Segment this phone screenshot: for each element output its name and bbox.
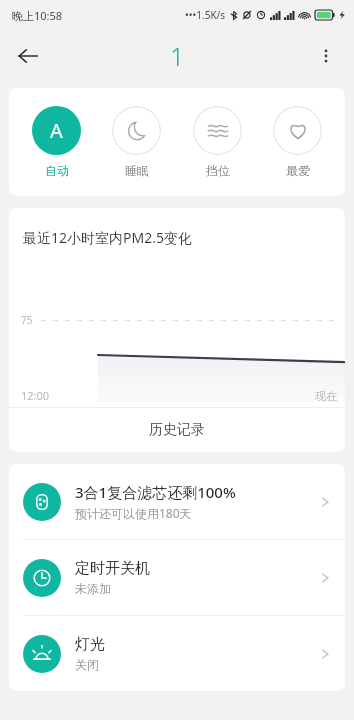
staticText: 3合1复合滤芯还剩100% bbox=[75, 482, 236, 502]
staticText: 1 bbox=[170, 39, 185, 73]
button[interactable]: Back bbox=[6, 34, 50, 78]
button[interactable]: 灯光 bbox=[9, 616, 345, 691]
staticText: 12:00 bbox=[21, 388, 50, 403]
staticText: 自动 bbox=[45, 163, 69, 178]
button[interactable]: More options bbox=[304, 34, 348, 78]
staticText: A bbox=[50, 117, 63, 144]
staticText: 挡位 bbox=[206, 163, 230, 178]
button[interactable]: A bbox=[24, 106, 89, 178]
staticText: •••1.5K/s bbox=[185, 8, 226, 22]
staticText: 灯光 bbox=[75, 635, 105, 654]
button[interactable]: 历史记录 bbox=[9, 408, 345, 452]
button[interactable]: 定时开关机 bbox=[9, 540, 345, 615]
staticText: 最近12小时室内PM2.5变化 bbox=[23, 228, 192, 247]
staticText: 历史记录 bbox=[149, 421, 205, 439]
staticText: 定时开关机 bbox=[75, 559, 150, 578]
staticText: 预计还可以使用180天 bbox=[75, 505, 192, 521]
button[interactable]: 挡位 bbox=[185, 106, 250, 178]
button[interactable]: 最爱 bbox=[265, 106, 330, 178]
staticText: 睡眠 bbox=[125, 163, 149, 178]
staticText: 最爱 bbox=[286, 163, 310, 178]
button[interactable]: 睡眠 bbox=[104, 106, 169, 178]
staticText: 现在 bbox=[315, 389, 337, 403]
staticText: 关闭 bbox=[75, 657, 99, 672]
button[interactable]: 3合1复合滤芯还剩100% bbox=[9, 464, 345, 539]
staticText: 未添加 bbox=[75, 581, 111, 596]
staticText: 晚上10:58 bbox=[12, 8, 63, 23]
staticText: 75 bbox=[21, 313, 33, 327]
